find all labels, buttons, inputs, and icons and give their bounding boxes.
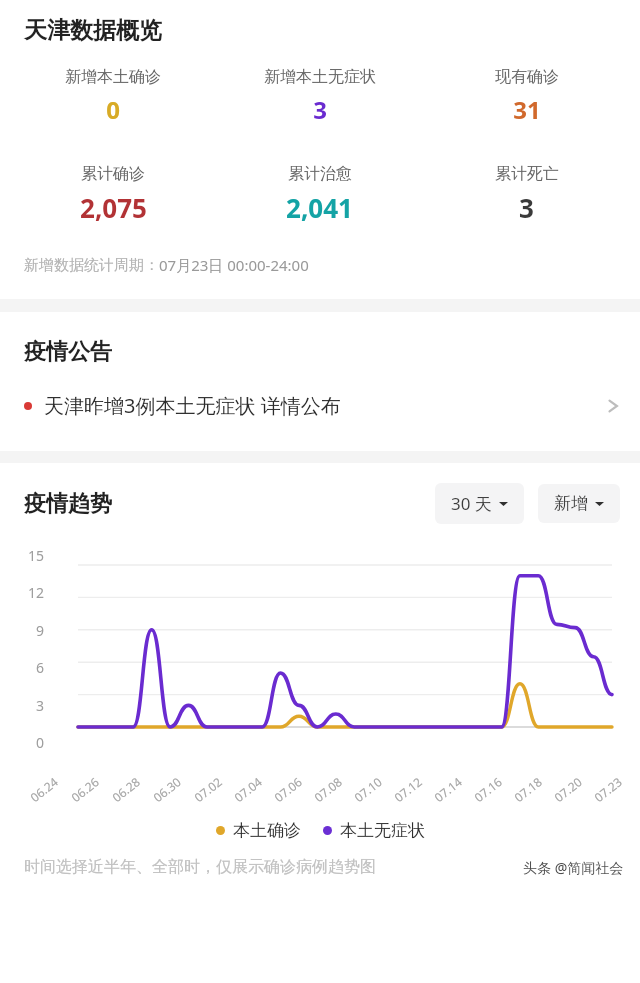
button[interactable]: 累计确诊 — [10, 164, 216, 225]
staticText: 6 — [18, 658, 44, 677]
staticText: 07.04 — [231, 773, 265, 805]
button[interactable]: 累计治愈 — [216, 164, 423, 225]
staticText: 07.12 — [391, 773, 425, 805]
staticText: 07.16 — [471, 773, 505, 805]
staticText: 累计治愈 — [288, 164, 352, 184]
staticText: 2,075 — [80, 190, 147, 225]
staticText: 新增数据统计周期： — [24, 256, 159, 275]
staticText: 07.02 — [191, 773, 225, 805]
button[interactable]: 疫情趋势 — [24, 490, 112, 518]
staticText: 3 — [519, 190, 534, 225]
staticText: 新增 — [554, 493, 588, 514]
staticText: 07.06 — [271, 773, 305, 805]
button[interactable]: 本土无症状 — [323, 820, 425, 841]
staticText: 12 — [18, 583, 44, 602]
button[interactable]: 30 天 — [435, 483, 524, 524]
staticText: 06.24 — [27, 773, 61, 805]
staticText: 天津数据概览 — [24, 16, 162, 45]
staticText: 07.10 — [351, 773, 385, 805]
staticText: 0 — [106, 93, 120, 126]
staticText: 07.23 — [591, 773, 625, 805]
staticText: 07.14 — [431, 773, 465, 805]
staticText: 07.18 — [511, 773, 545, 805]
staticText: 新增本土无症状 — [264, 67, 376, 87]
staticText: 9 — [18, 621, 44, 640]
staticText: 本土确诊 — [233, 820, 301, 841]
staticText: 2,041 — [286, 190, 353, 225]
staticText: 07月23日 00:00-24:00 — [159, 255, 309, 275]
button[interactable]: 新增本土确诊 — [10, 67, 216, 126]
button[interactable]: 天津昨增3例本土无症状 详情公布 — [0, 388, 640, 423]
staticText: 累计死亡 — [495, 164, 559, 184]
staticText: 06.28 — [109, 773, 143, 805]
staticText: 07.08 — [311, 773, 345, 805]
staticText: 15 — [18, 546, 44, 565]
staticText: 30 天 — [451, 492, 492, 515]
staticText: 3 — [313, 93, 327, 126]
staticText: 疫情公告 — [24, 338, 112, 366]
button[interactable]: 新增 — [538, 484, 620, 523]
staticText: 头条 @简闻社会 — [523, 858, 624, 877]
button[interactable]: 累计死亡 — [423, 164, 630, 225]
staticText: 3 — [18, 696, 44, 715]
staticText: 0 — [18, 733, 44, 752]
button[interactable]: 现有确诊 — [423, 67, 630, 126]
staticText: 新增本土确诊 — [65, 67, 161, 87]
staticText: 天津昨增3例本土无症状 详情公布 — [44, 392, 341, 419]
button[interactable]: 本土确诊 — [216, 820, 301, 841]
staticText: 06.26 — [68, 773, 102, 805]
staticText: 累计确诊 — [81, 164, 145, 184]
staticText: 本土无症状 — [340, 820, 425, 841]
staticText: 31 — [513, 93, 541, 126]
staticText: 现有确诊 — [495, 67, 559, 87]
staticText: 06.30 — [150, 773, 184, 805]
staticText: 时间选择近半年、全部时，仅展示确诊病例趋势图 — [24, 857, 376, 877]
button[interactable]: 新增本土无症状 — [216, 67, 423, 126]
staticText: 07.20 — [551, 773, 585, 805]
